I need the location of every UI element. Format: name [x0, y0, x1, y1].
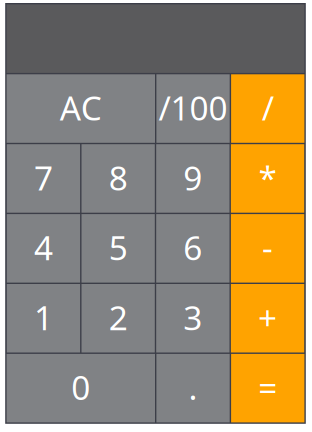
- button[interactable]: Equals: [231, 354, 304, 422]
- staticText: -: [262, 225, 273, 269]
- staticText: 8: [109, 155, 128, 200]
- staticText: 3: [183, 295, 202, 339]
- button[interactable]: Decimal point: [156, 354, 230, 422]
- staticText: 2: [109, 295, 128, 339]
- button[interactable]: 3: [156, 284, 229, 352]
- staticText: /: [262, 85, 274, 130]
- button[interactable]: 8: [81, 144, 155, 213]
- staticText: AC: [60, 85, 102, 130]
- staticText: /100: [159, 85, 228, 130]
- staticText: 4: [34, 225, 53, 269]
- staticText: =: [258, 365, 277, 409]
- button[interactable]: 7: [7, 144, 80, 213]
- button[interactable]: Add: [231, 284, 304, 352]
- button[interactable]: Multiply: [231, 144, 304, 213]
- button[interactable]: 1: [7, 284, 80, 352]
- staticText: 5: [109, 225, 128, 269]
- staticText: 9: [183, 155, 202, 200]
- button[interactable]: Subtract: [231, 214, 304, 283]
- staticText: *: [259, 155, 277, 200]
- staticText: +: [258, 295, 277, 339]
- staticText: 0: [71, 365, 90, 409]
- button[interactable]: 5: [81, 214, 155, 283]
- button[interactable]: All clear: [7, 74, 155, 143]
- button[interactable]: 4: [7, 214, 80, 283]
- staticText: 7: [34, 155, 53, 200]
- button[interactable]: Divide by one hundred: [156, 74, 230, 143]
- button[interactable]: Divide: [231, 74, 304, 143]
- staticText: 6: [183, 225, 202, 269]
- button[interactable]: 0: [7, 354, 155, 422]
- staticText: 1: [34, 295, 53, 339]
- button[interactable]: 9: [156, 144, 229, 213]
- button[interactable]: 6: [156, 214, 229, 283]
- staticText: .: [189, 365, 198, 409]
- button[interactable]: 2: [81, 284, 155, 352]
